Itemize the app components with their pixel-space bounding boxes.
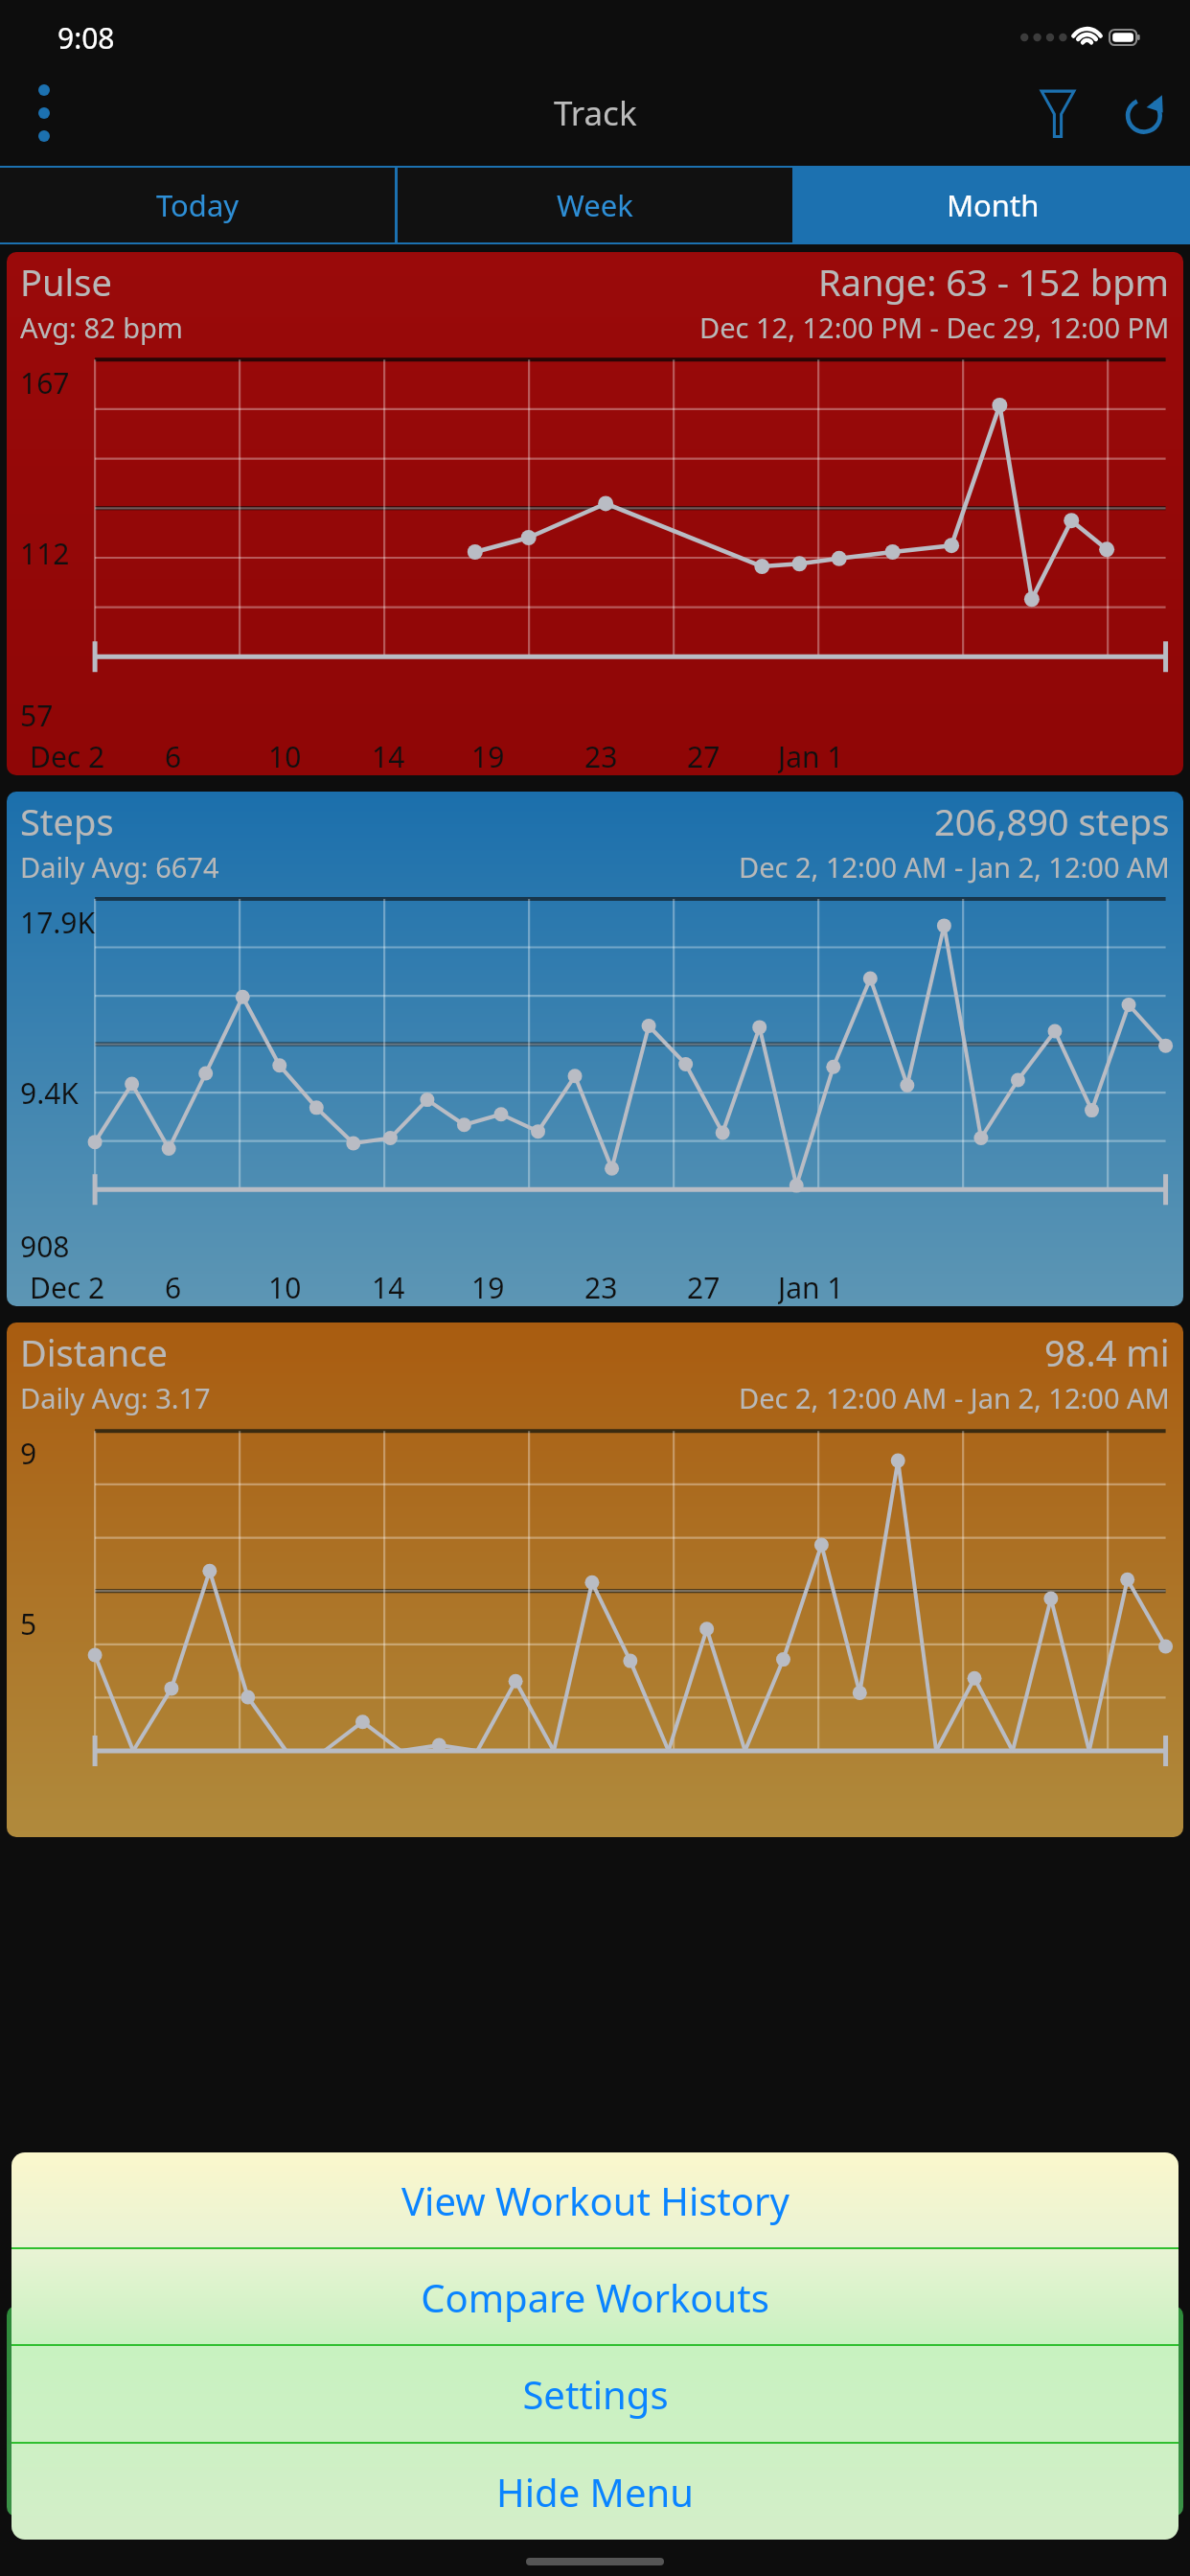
staticText: 206,890 steps — [934, 796, 1170, 846]
button[interactable]: Month — [795, 168, 1190, 242]
staticText: 14 — [372, 1268, 405, 1306]
button[interactable]: Today — [0, 168, 395, 242]
staticText: Track — [554, 90, 637, 136]
staticText: 17.9K — [20, 903, 96, 942]
staticText: Dec 2, 12:00 AM - Jan 2, 12:00 AM — [739, 1379, 1170, 1416]
staticText: 23 — [584, 1268, 618, 1306]
staticText: Dec 2 — [30, 1268, 105, 1306]
staticText: 6 — [165, 1268, 182, 1306]
staticText: 23 — [584, 737, 618, 775]
button[interactable]: Distance — [7, 1322, 1183, 1837]
staticText: Week — [557, 185, 633, 225]
staticText: Hide Menu — [496, 2466, 694, 2518]
button[interactable]: Hide Menu — [11, 2444, 1179, 2540]
staticText: 19 — [471, 1268, 505, 1306]
staticText: 9 — [20, 1434, 37, 1473]
staticText: 27 — [687, 737, 721, 775]
button[interactable]: Settings — [11, 2346, 1179, 2442]
staticText: 9.4K — [20, 1073, 79, 1113]
button[interactable]: Week — [398, 168, 792, 242]
staticText: Dec 2, 12:00 AM - Jan 2, 12:00 AM — [739, 848, 1170, 885]
staticText: 167 — [20, 363, 70, 402]
staticText: Daily Avg: 6674 — [20, 848, 219, 885]
staticText: Settings — [522, 2368, 669, 2420]
staticText: 9:08 — [57, 18, 115, 57]
staticText: Jan 1 — [778, 1268, 844, 1306]
staticText: 57 — [20, 696, 54, 735]
staticText: Steps — [20, 796, 114, 846]
staticText: Month — [947, 185, 1040, 225]
staticText: 5 — [20, 1604, 37, 1644]
button[interactable]: View Workout History — [11, 2152, 1179, 2247]
staticText: View Workout History — [401, 2174, 790, 2226]
staticText: 112 — [20, 534, 70, 573]
button[interactable]: Pulse — [7, 252, 1183, 775]
staticText: Dec 12, 12:00 PM - Dec 29, 12:00 PM — [699, 309, 1170, 346]
button[interactable]: More options — [0, 69, 88, 157]
button[interactable]: Compare Workouts — [11, 2249, 1179, 2344]
staticText: Jan 1 — [778, 737, 844, 775]
staticText: Range: 63 - 152 bpm — [818, 257, 1170, 307]
staticText: Today — [156, 185, 240, 225]
staticText: Daily Avg: 3.17 — [20, 1379, 211, 1416]
staticText: 19 — [471, 737, 505, 775]
staticText: 10 — [268, 1268, 302, 1306]
staticText: Compare Workouts — [421, 2271, 769, 2323]
staticText: 14 — [372, 737, 405, 775]
button[interactable]: Refresh — [1102, 69, 1190, 157]
staticText: 908 — [20, 1227, 70, 1266]
staticText: Avg: 82 bpm — [20, 309, 183, 346]
staticText: 98.4 mi — [1044, 1327, 1170, 1377]
button[interactable]: Steps — [7, 792, 1183, 1306]
staticText: Distance — [20, 1327, 168, 1377]
staticText: Pulse — [20, 257, 112, 307]
staticText: 6 — [165, 737, 182, 775]
staticText: 10 — [268, 737, 302, 775]
staticText: Dec 2 — [30, 737, 105, 775]
button[interactable]: Filter — [1014, 69, 1102, 157]
staticText: 27 — [687, 1268, 721, 1306]
